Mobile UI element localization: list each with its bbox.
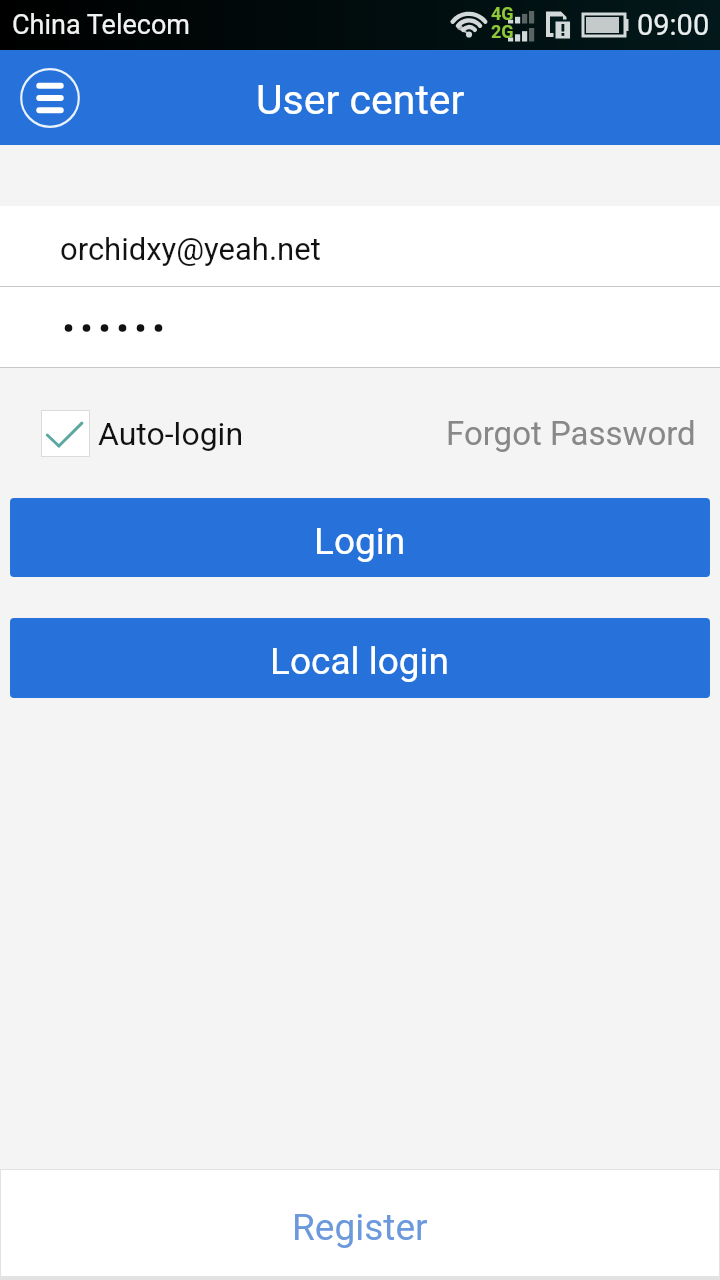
button[interactable]: Login [10, 498, 710, 577]
staticText: China Telecom [12, 9, 190, 41]
staticText: 09:00 [637, 8, 710, 42]
button[interactable]: orchidxy@yeah.net [0, 206, 720, 286]
button[interactable]: Open navigation menu [20, 68, 80, 128]
staticText: Forgot Password [446, 414, 696, 453]
button[interactable]: Local login [10, 618, 710, 698]
staticText: 4G [491, 3, 514, 24]
staticText: Auto-login [98, 415, 244, 453]
staticText: Local login [270, 640, 450, 683]
staticText: Login [314, 520, 406, 563]
button[interactable]: Forgot Password [436, 406, 706, 461]
button[interactable]: Password [0, 287, 720, 367]
staticText: Register [292, 1206, 428, 1249]
staticText: orchidxy@yeah.net [60, 231, 321, 267]
button[interactable]: Register [0, 1169, 720, 1277]
staticText: User center [256, 76, 465, 124]
staticText: 2G [491, 21, 514, 42]
button[interactable]: Auto-login [41, 410, 244, 457]
